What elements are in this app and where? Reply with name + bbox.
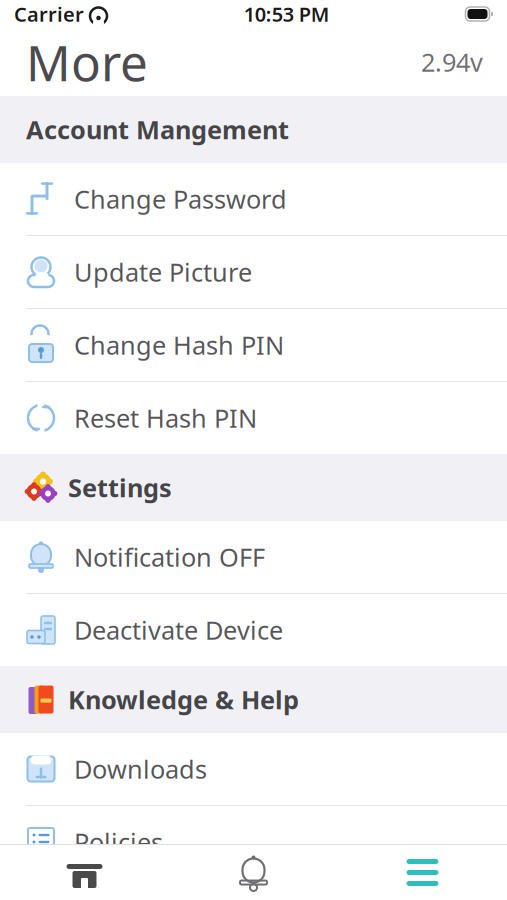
button[interactable]: Notifications: [169, 845, 338, 900]
staticText: Change Hash PIN: [74, 328, 284, 362]
button[interactable]: Downloads: [0, 733, 507, 806]
staticText: Notification OFF: [74, 540, 265, 574]
button[interactable]: Update Picture: [0, 236, 507, 309]
button[interactable]: More: [338, 845, 507, 900]
staticText: Carrier: [14, 1, 84, 27]
staticText: Reset Hash PIN: [74, 401, 257, 435]
button[interactable]: Notification OFF: [0, 521, 507, 594]
staticText: Deactivate Device: [74, 613, 283, 647]
button[interactable]: Home: [0, 845, 169, 900]
staticText: Settings: [68, 471, 172, 504]
staticText: Policies: [74, 825, 163, 859]
staticText: 10:53 PM: [244, 1, 330, 27]
button[interactable]: Change Hash PIN: [0, 309, 507, 382]
staticText: Knowledge & Help: [68, 683, 299, 716]
staticText: More: [26, 29, 148, 95]
staticText: 2.94v: [421, 45, 483, 79]
button[interactable]: Policies: [0, 806, 507, 879]
staticText: Update Picture: [74, 255, 252, 289]
staticText: Account Mangement: [26, 113, 289, 146]
button[interactable]: Reset Hash PIN: [0, 382, 507, 454]
staticText: Downloads: [74, 752, 207, 786]
button[interactable]: Change Password: [0, 163, 507, 236]
staticText: Change Password: [74, 182, 287, 216]
button[interactable]: Deactivate Device: [0, 594, 507, 666]
